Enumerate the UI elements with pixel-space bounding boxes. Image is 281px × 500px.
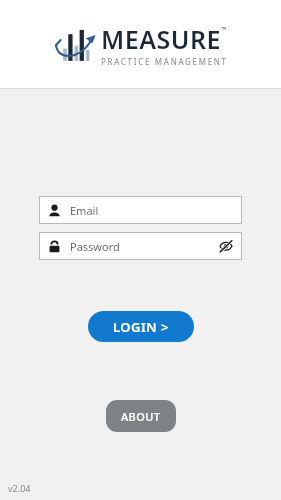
button[interactable]: Email [39,196,242,224]
staticText: LOGIN > [113,318,169,336]
staticText: ™ [221,25,227,35]
staticText: PRACTICE MANAGEMENT [101,56,228,67]
button[interactable]: ABOUT [106,400,176,432]
staticText: ABOUT [121,409,161,424]
button[interactable]: Show password [219,239,233,253]
other: Email [48,204,61,217]
button[interactable]: Password [39,232,242,260]
staticText: Password [70,239,219,254]
staticText: MEASURE [101,22,221,56]
staticText: Email [70,203,233,218]
staticText: v2.04 [8,482,31,494]
button[interactable]: LOGIN > [88,311,194,342]
other: Password [48,240,61,253]
